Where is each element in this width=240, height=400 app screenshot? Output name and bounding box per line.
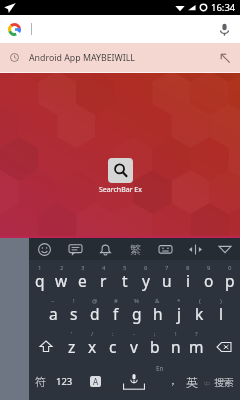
button[interactable]: En — [154, 359, 183, 399]
staticText: 8 — [186, 264, 190, 272]
button[interactable]: 0 — [219, 260, 240, 293]
staticText: ? — [195, 330, 198, 338]
staticText: s — [70, 303, 78, 324]
button[interactable]: ' — [62, 326, 82, 359]
button[interactable]: Android App MAYBEIWILL — [0, 43, 240, 72]
button[interactable]: ? — [186, 326, 207, 359]
button[interactable]: Voice search — [211, 16, 237, 42]
staticText: # — [114, 297, 118, 305]
button[interactable]: # — [105, 293, 126, 326]
staticText: ! — [175, 330, 177, 338]
staticText: 1 — [38, 264, 42, 272]
staticText: r — [100, 270, 107, 291]
staticText: ， — [171, 375, 181, 388]
staticText: o — [204, 270, 214, 291]
button[interactable]: ( — [189, 293, 210, 326]
button[interactable]: 搜索 — [208, 359, 240, 399]
staticText: k — [195, 303, 204, 324]
staticText: 繁 — [130, 241, 141, 257]
button[interactable]: Hide keyboard — [210, 238, 240, 260]
staticText: 符 — [35, 373, 46, 389]
staticText: j — [177, 303, 181, 324]
button[interactable]: ! — [165, 326, 186, 359]
staticText: d — [90, 303, 100, 324]
staticText: 123 — [56, 375, 73, 388]
button[interactable]: Notifications — [90, 238, 120, 260]
staticText: e — [78, 270, 87, 291]
button[interactable]: 符 — [29, 359, 51, 399]
staticText: 0 — [228, 264, 232, 272]
staticText: Android App MAYBEIWILL — [29, 52, 135, 64]
staticText: x — [88, 336, 97, 357]
button[interactable]: Space — [113, 359, 154, 399]
button[interactable]: 3 — [72, 260, 93, 293]
staticText: t — [122, 270, 128, 291]
staticText: m — [189, 336, 204, 357]
button[interactable]: ~ — [43, 293, 63, 326]
staticText: @ — [92, 297, 98, 305]
button[interactable]: Change language — [78, 359, 113, 399]
staticText: 3 — [81, 264, 85, 272]
staticText: ; — [154, 330, 156, 338]
staticText: a — [49, 303, 58, 324]
button[interactable]: - — [123, 326, 144, 359]
staticText: A — [93, 376, 99, 387]
button[interactable]: Emoji — [29, 238, 60, 260]
staticText: 中 — [204, 379, 211, 388]
staticText: 7 — [165, 264, 169, 272]
staticText: b — [150, 336, 160, 357]
staticText: w — [55, 270, 68, 291]
button[interactable]: : — [102, 326, 123, 359]
button[interactable]: Sticker — [150, 238, 180, 260]
button[interactable]: 4 — [93, 260, 114, 293]
button[interactable]: 8 — [177, 260, 198, 293]
staticText: u — [162, 270, 172, 291]
button[interactable]: 1 — [29, 260, 51, 293]
button[interactable]: Backspace — [207, 326, 240, 359]
button[interactable]: 英 — [183, 359, 208, 399]
staticText: 2 — [60, 264, 64, 272]
button[interactable]: & — [147, 293, 168, 326]
button[interactable]: / — [82, 326, 102, 359]
button[interactable]: Messages — [60, 238, 90, 260]
button[interactable]: % — [126, 293, 147, 326]
staticText: i — [186, 270, 190, 291]
button[interactable]: 7 — [156, 260, 177, 293]
staticText: z — [68, 336, 76, 357]
staticText: c — [109, 336, 117, 357]
button[interactable]: Google — [0, 15, 28, 43]
staticText: 16:34 — [211, 1, 236, 14]
button[interactable]: SearchBar Ex — [99, 158, 142, 195]
staticText: q — [35, 270, 45, 291]
button[interactable]: 6 — [135, 260, 156, 293]
staticText: 9 — [207, 264, 211, 272]
staticText: 5 — [123, 264, 127, 272]
staticText: n — [171, 336, 181, 357]
staticText: 英 — [186, 373, 199, 390]
button[interactable]: 2 — [51, 260, 72, 293]
staticText: ' — [71, 330, 73, 338]
button[interactable]: * — [168, 293, 189, 326]
staticText: h — [153, 303, 163, 324]
button[interactable]: 繁 — [120, 238, 150, 260]
staticText: ~ — [51, 297, 55, 305]
staticText: SearchBar Ex — [99, 185, 142, 195]
button[interactable]: ! — [63, 293, 84, 326]
button[interactable]: Shift — [29, 326, 62, 359]
button[interactable]: 123 — [51, 359, 78, 399]
button[interactable]: 9 — [198, 260, 219, 293]
button[interactable]: ; — [144, 326, 165, 359]
button[interactable]: Move cursor — [180, 238, 210, 260]
button[interactable]: Fill in suggestion — [212, 45, 238, 71]
staticText: - — [133, 330, 135, 338]
staticText: ! — [73, 297, 75, 305]
staticText: En — [156, 364, 164, 373]
staticText: f — [113, 303, 119, 324]
button[interactable]: @ — [84, 293, 105, 326]
staticText: v — [130, 336, 138, 357]
staticText: / — [91, 330, 94, 338]
button[interactable]: 5 — [114, 260, 135, 293]
button[interactable]: ) — [210, 293, 231, 326]
staticText: 6 — [144, 264, 148, 272]
staticText: p — [225, 270, 235, 291]
